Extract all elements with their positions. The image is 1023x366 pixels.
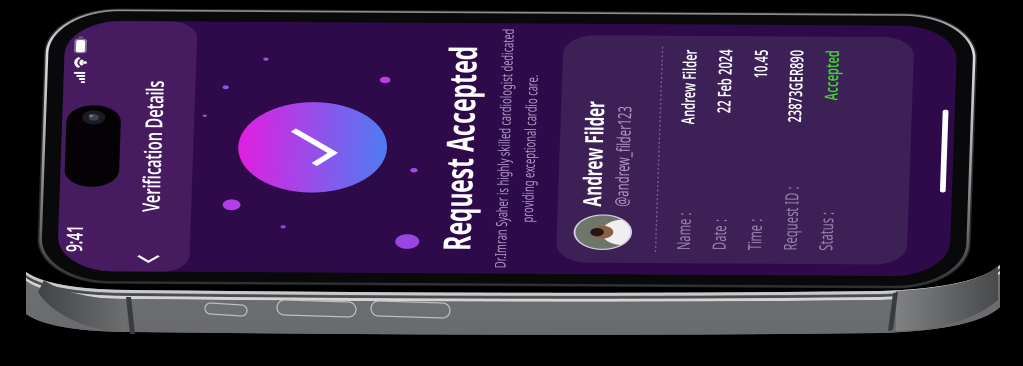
staticText: Verification Details — [93, 72, 299, 102]
staticText: 9:41 — [30, 1, 72, 29]
